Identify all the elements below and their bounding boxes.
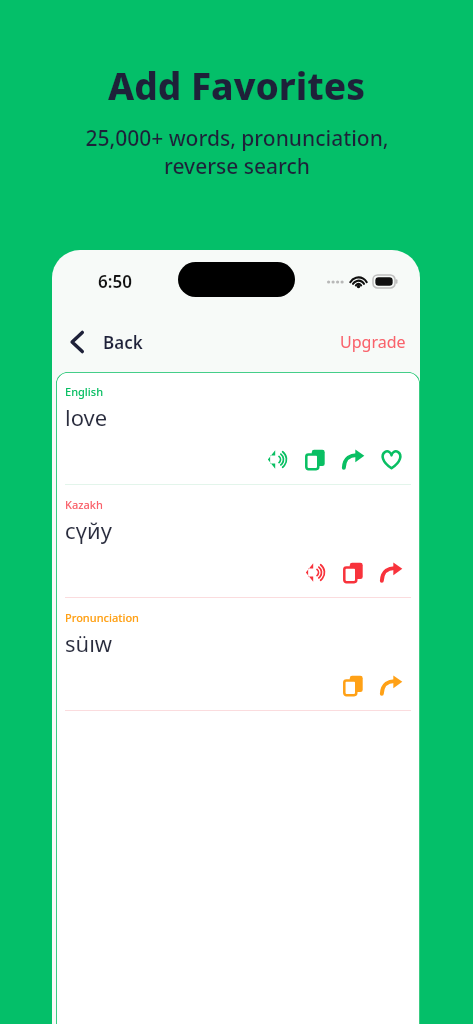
button[interactable]: Favorite [374, 442, 408, 476]
button[interactable]: Upgrade [326, 312, 420, 372]
staticText: 6:50 [98, 270, 132, 293]
button[interactable]: Copy [336, 668, 370, 702]
button[interactable]: Share [374, 555, 408, 589]
button[interactable]: Copy [298, 442, 332, 476]
button[interactable]: Share [374, 668, 408, 702]
staticText: Back [103, 331, 143, 354]
staticText: Add Favorites [108, 60, 365, 110]
button[interactable]: Back [52, 312, 157, 372]
staticText: Upgrade [340, 331, 406, 353]
staticText: süıw [65, 628, 113, 658]
staticText: English [65, 384, 104, 399]
button[interactable]: Pronounce [298, 555, 332, 589]
button[interactable]: Pronounce [260, 442, 294, 476]
staticText: сүйу [65, 515, 112, 545]
button[interactable]: Copy [336, 555, 370, 589]
staticText: Pronunciation [65, 610, 140, 625]
button[interactable]: Share [336, 442, 370, 476]
staticText: love [65, 402, 108, 432]
staticText: 25,000+ words, pronunciation, reverse se… [85, 124, 389, 180]
staticText: Kazakh [65, 497, 103, 512]
